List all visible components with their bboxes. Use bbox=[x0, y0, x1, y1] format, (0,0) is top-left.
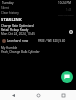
staticText: FREE / WE $20 JS 40 bbox=[38, 39, 66, 43]
button[interactable]: Mute bbox=[69, 30, 73, 34]
staticText: 10:24 PM bbox=[58, 1, 71, 5]
staticText: LIVE CAPTION bbox=[58, 13, 74, 16]
staticText: Leonhard now bbox=[7, 39, 29, 43]
button[interactable]: Home bbox=[26, 90, 51, 100]
staticText: Yeah, Change Bulb Cylinder bbox=[1, 50, 40, 54]
staticText: Retail Pickup Ready bbox=[1, 28, 29, 32]
staticText: Charge Rate Optimized bbox=[1, 24, 34, 28]
button[interactable]: Recent apps bbox=[51, 90, 76, 100]
staticText: STARLINK bbox=[1, 17, 22, 22]
button[interactable]: Back bbox=[0, 90, 26, 100]
staticText: Mon Oct 24, 2024, 10:45 bbox=[1, 32, 35, 36]
staticText: Silent bbox=[1, 6, 9, 10]
staticText: Tuesday bbox=[2, 1, 14, 5]
button[interactable]: Start chat bbox=[61, 71, 73, 83]
staticText: My Humble bbox=[1, 46, 18, 50]
staticText: 1:45 bbox=[66, 8, 72, 12]
staticText: Clear history bbox=[1, 11, 19, 15]
